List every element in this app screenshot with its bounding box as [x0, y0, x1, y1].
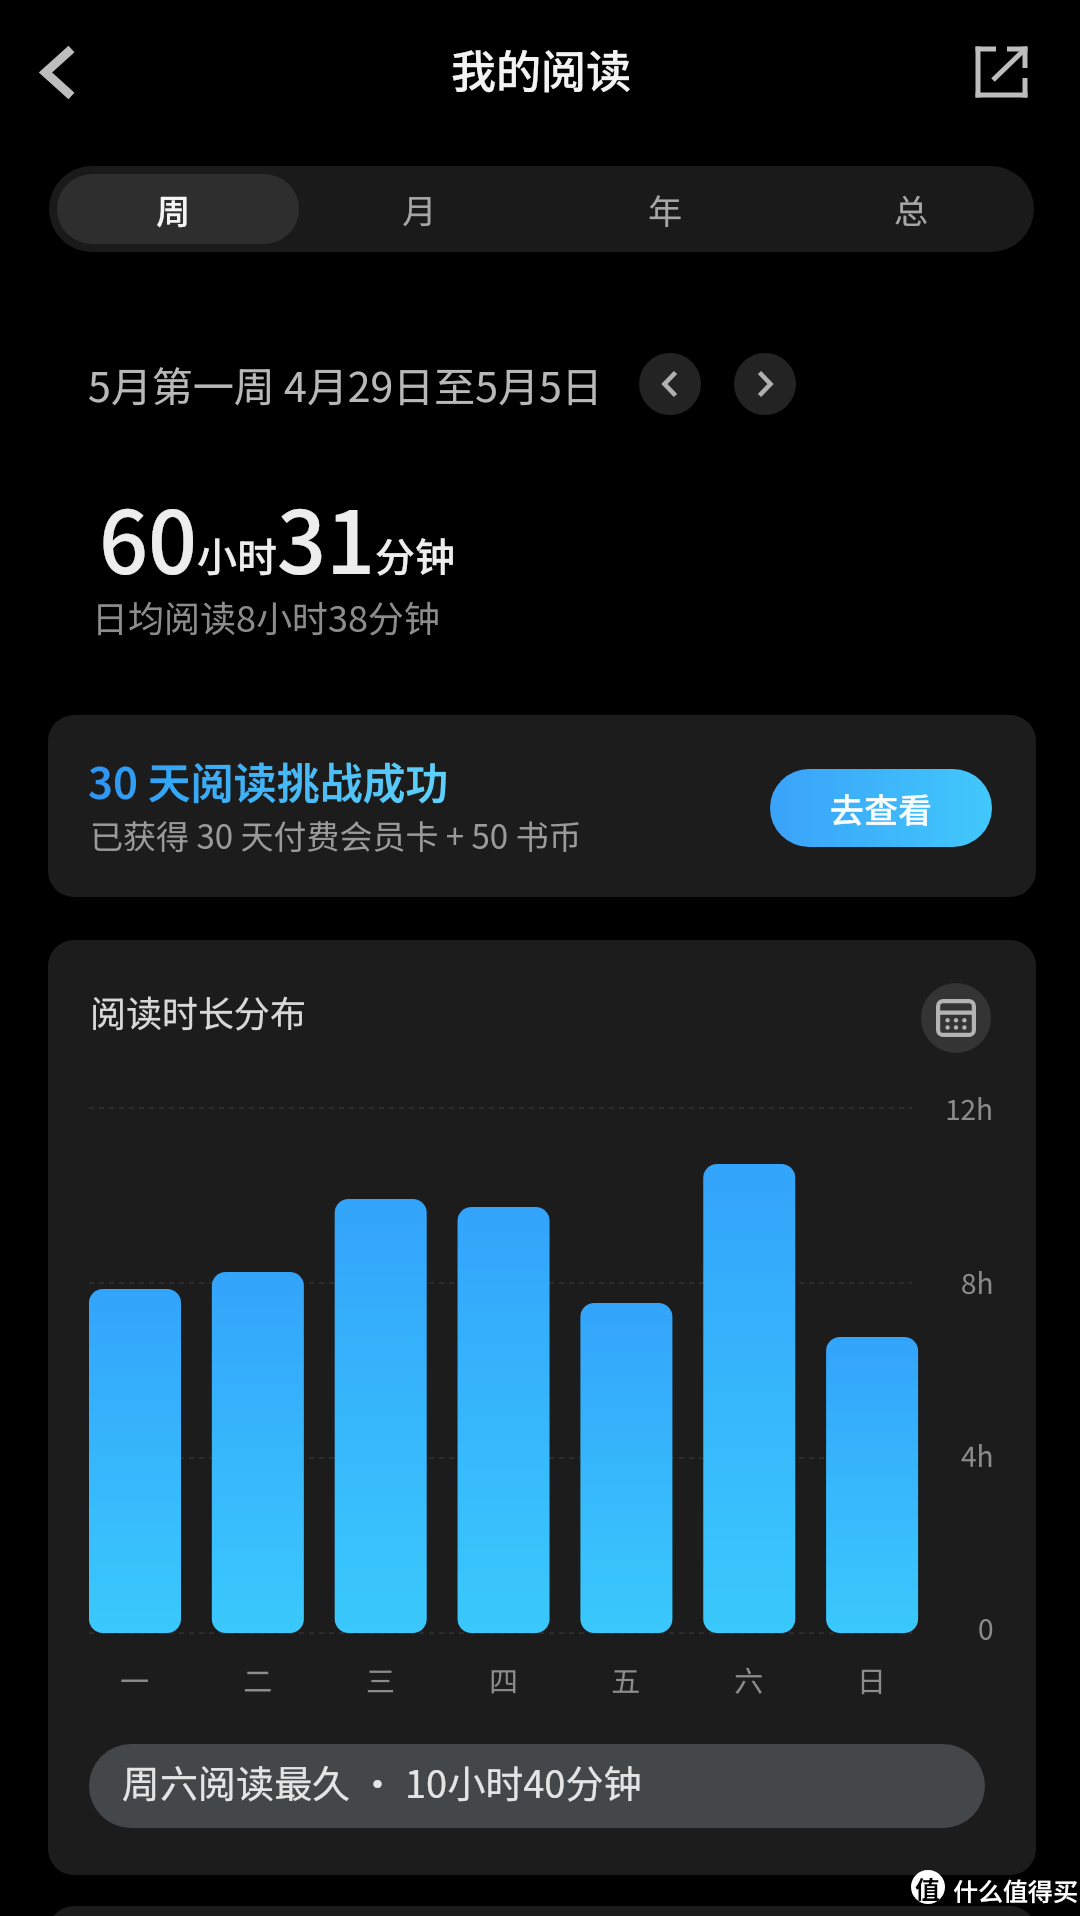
button[interactable]: 年	[542, 166, 788, 252]
button[interactable]: Share	[971, 42, 1033, 104]
staticText: 值	[915, 1870, 941, 1904]
staticText: 二	[243, 1658, 273, 1700]
staticText: 去查看	[830, 784, 932, 833]
button[interactable]: 去查看	[770, 769, 992, 847]
staticText: 周六阅读最久 · 10小时40分钟	[122, 1754, 642, 1809]
staticText: 小时	[197, 526, 277, 584]
staticText: 日	[857, 1658, 887, 1700]
staticText: 什么值得买	[953, 1872, 1079, 1908]
button[interactable]: 周六阅读最久 · 10小时40分钟	[89, 1744, 985, 1828]
staticText: 4h	[961, 1435, 994, 1476]
button[interactable]: 总	[788, 166, 1034, 252]
staticText: 31	[277, 474, 376, 599]
staticText: 阅读时长分布	[90, 985, 307, 1037]
staticText: 月	[402, 185, 436, 234]
staticText: 年	[648, 185, 682, 234]
staticText: 我的阅读	[451, 36, 632, 101]
staticText: 五	[611, 1658, 641, 1700]
button[interactable]: 月	[296, 166, 542, 252]
staticText: 六	[734, 1658, 764, 1700]
staticText: 总	[894, 185, 928, 234]
staticText: 0	[978, 1608, 994, 1649]
staticText: 分钟	[375, 526, 455, 584]
staticText: 30 天阅读挑战成功	[88, 749, 449, 811]
staticText: 5月第一周 4月29日至5月5日	[88, 354, 603, 413]
button[interactable]: Back	[22, 36, 95, 109]
button[interactable]: Next week	[734, 353, 796, 415]
staticText: 已获得 30 天付费会员卡 + 50 书币	[90, 811, 582, 859]
button[interactable]: Select date	[921, 983, 991, 1053]
button[interactable]: 30 天阅读挑战成功	[48, 715, 1036, 897]
button[interactable]: Previous week	[639, 353, 701, 415]
staticText: 60	[99, 474, 198, 599]
button[interactable]: 周	[49, 166, 296, 252]
staticText: 一	[120, 1658, 150, 1700]
staticText: 三	[366, 1658, 396, 1700]
button[interactable]	[48, 1906, 1036, 1916]
staticText: 四	[489, 1658, 519, 1700]
staticText: 8h	[961, 1262, 994, 1303]
staticText: 日均阅读8小时38分钟	[92, 590, 440, 642]
staticText: 周	[156, 185, 190, 234]
staticText: 12h	[945, 1088, 994, 1129]
